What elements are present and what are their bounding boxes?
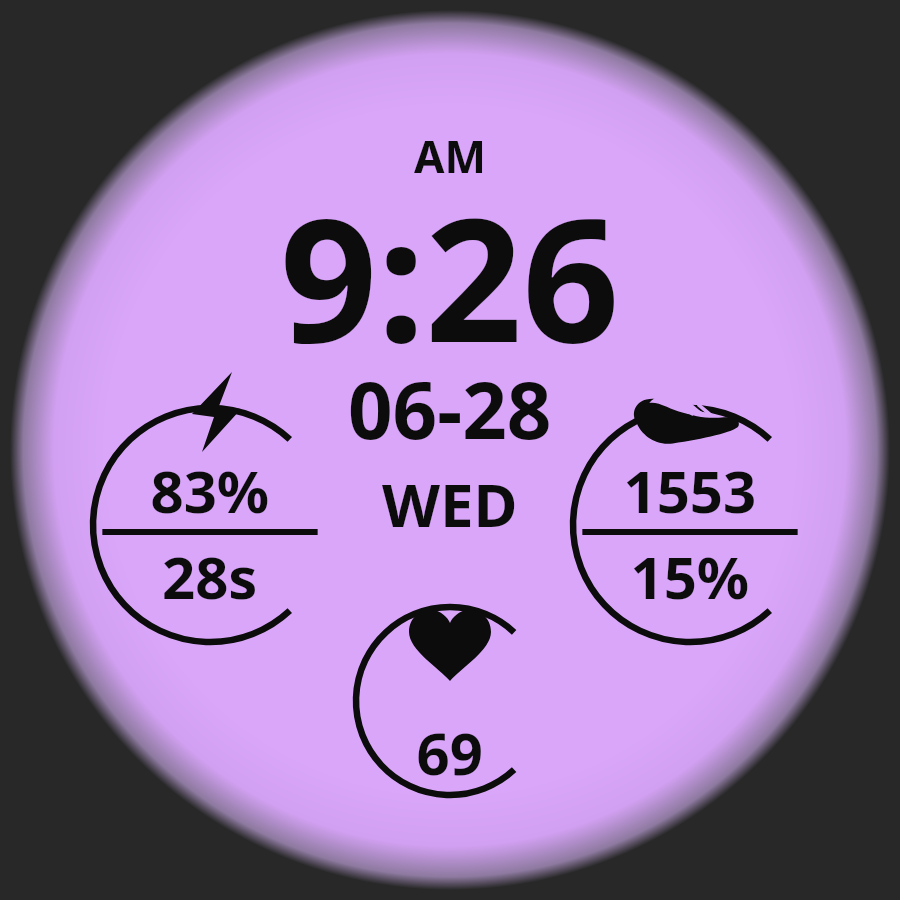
button[interactable]: Battery complication, 83 percent [93,408,327,642]
button[interactable]: Time 9:26 AM [255,120,645,335]
button[interactable]: Heart rate complication, 69 bpm [356,607,544,795]
button[interactable]: Steps complication, 1553 steps [573,408,807,642]
button[interactable]: Date 06-28 Wednesday [320,350,580,510]
